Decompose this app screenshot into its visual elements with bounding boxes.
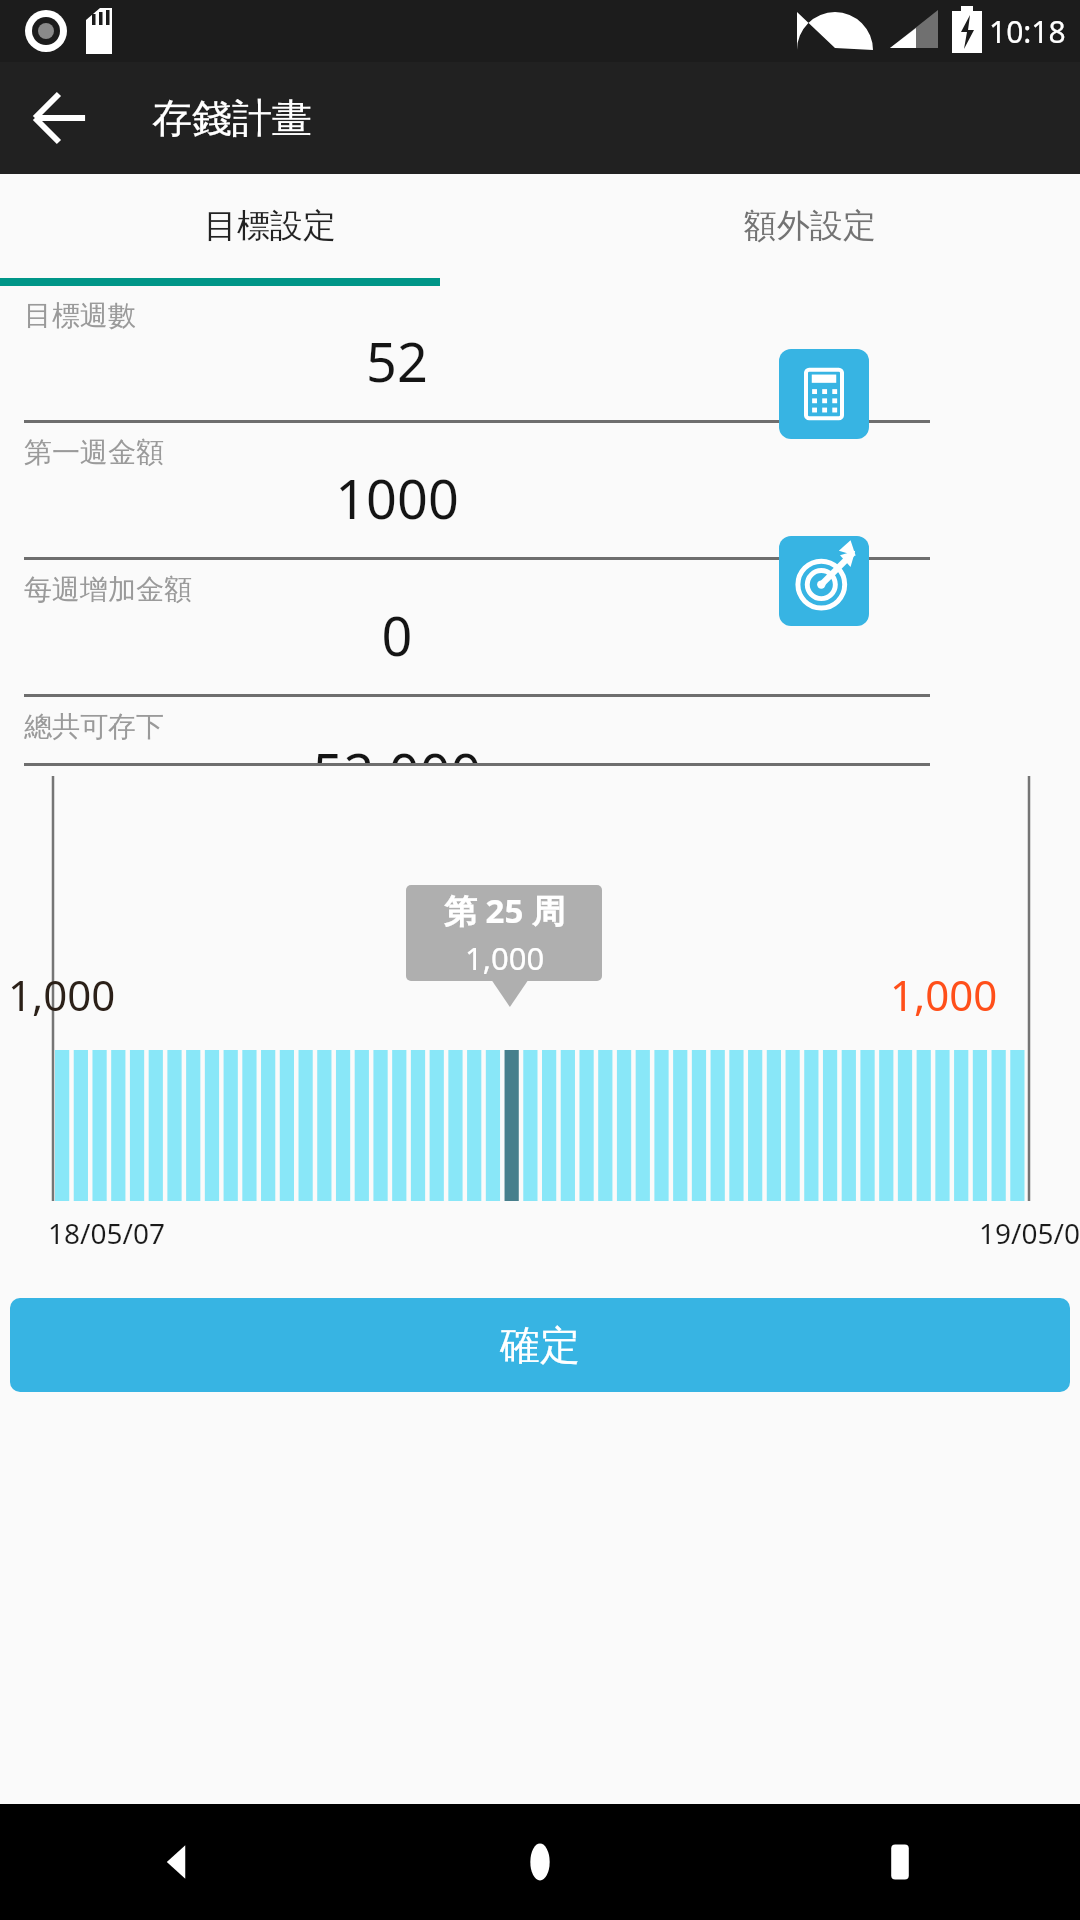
staticText: 目標週數 bbox=[24, 298, 136, 333]
button[interactable]: Home bbox=[360, 1804, 720, 1920]
staticText: 10:18 bbox=[989, 11, 1066, 52]
staticText: 1,000 bbox=[8, 966, 116, 1023]
staticText: 總共可存下 bbox=[24, 709, 164, 744]
button[interactable]: Set goal bbox=[779, 536, 869, 626]
staticText: 目標設定 bbox=[204, 205, 336, 247]
staticText: 每週增加金額 bbox=[24, 572, 192, 607]
button[interactable]: Back bbox=[0, 1804, 360, 1920]
staticText: 52 bbox=[24, 324, 770, 398]
button[interactable]: Calculator bbox=[779, 349, 869, 439]
button[interactable]: 確定 bbox=[10, 1298, 1070, 1392]
button[interactable]: 第 25 周 bbox=[406, 885, 602, 981]
button[interactable]: 第一週金額 bbox=[0, 423, 1080, 560]
staticText: 存錢計畫 bbox=[152, 93, 312, 143]
staticText: 52,000 bbox=[24, 735, 770, 766]
button[interactable]: 總共可存下 bbox=[0, 697, 1080, 766]
staticText: 第 25 周 bbox=[444, 888, 565, 933]
staticText: 18/05/07 bbox=[48, 1214, 165, 1252]
button[interactable]: 額外設定 bbox=[540, 174, 1080, 278]
staticText: 第一週金額 bbox=[24, 435, 164, 470]
staticText: 19/05/0 bbox=[979, 1214, 1080, 1252]
staticText: 0 bbox=[24, 598, 770, 672]
button[interactable]: Back bbox=[22, 80, 98, 156]
staticText: 確定 bbox=[500, 1320, 580, 1370]
staticText: 1,000 bbox=[465, 937, 545, 979]
button[interactable]: 目標週數 bbox=[0, 286, 1080, 423]
staticText: 額外設定 bbox=[744, 205, 876, 247]
button[interactable]: 每週增加金額 bbox=[0, 560, 1080, 697]
button[interactable]: Recents bbox=[720, 1804, 1080, 1920]
staticText: 1,000 bbox=[890, 966, 998, 1023]
button[interactable]: 目標設定 bbox=[0, 174, 540, 278]
staticText: 1000 bbox=[24, 461, 770, 535]
